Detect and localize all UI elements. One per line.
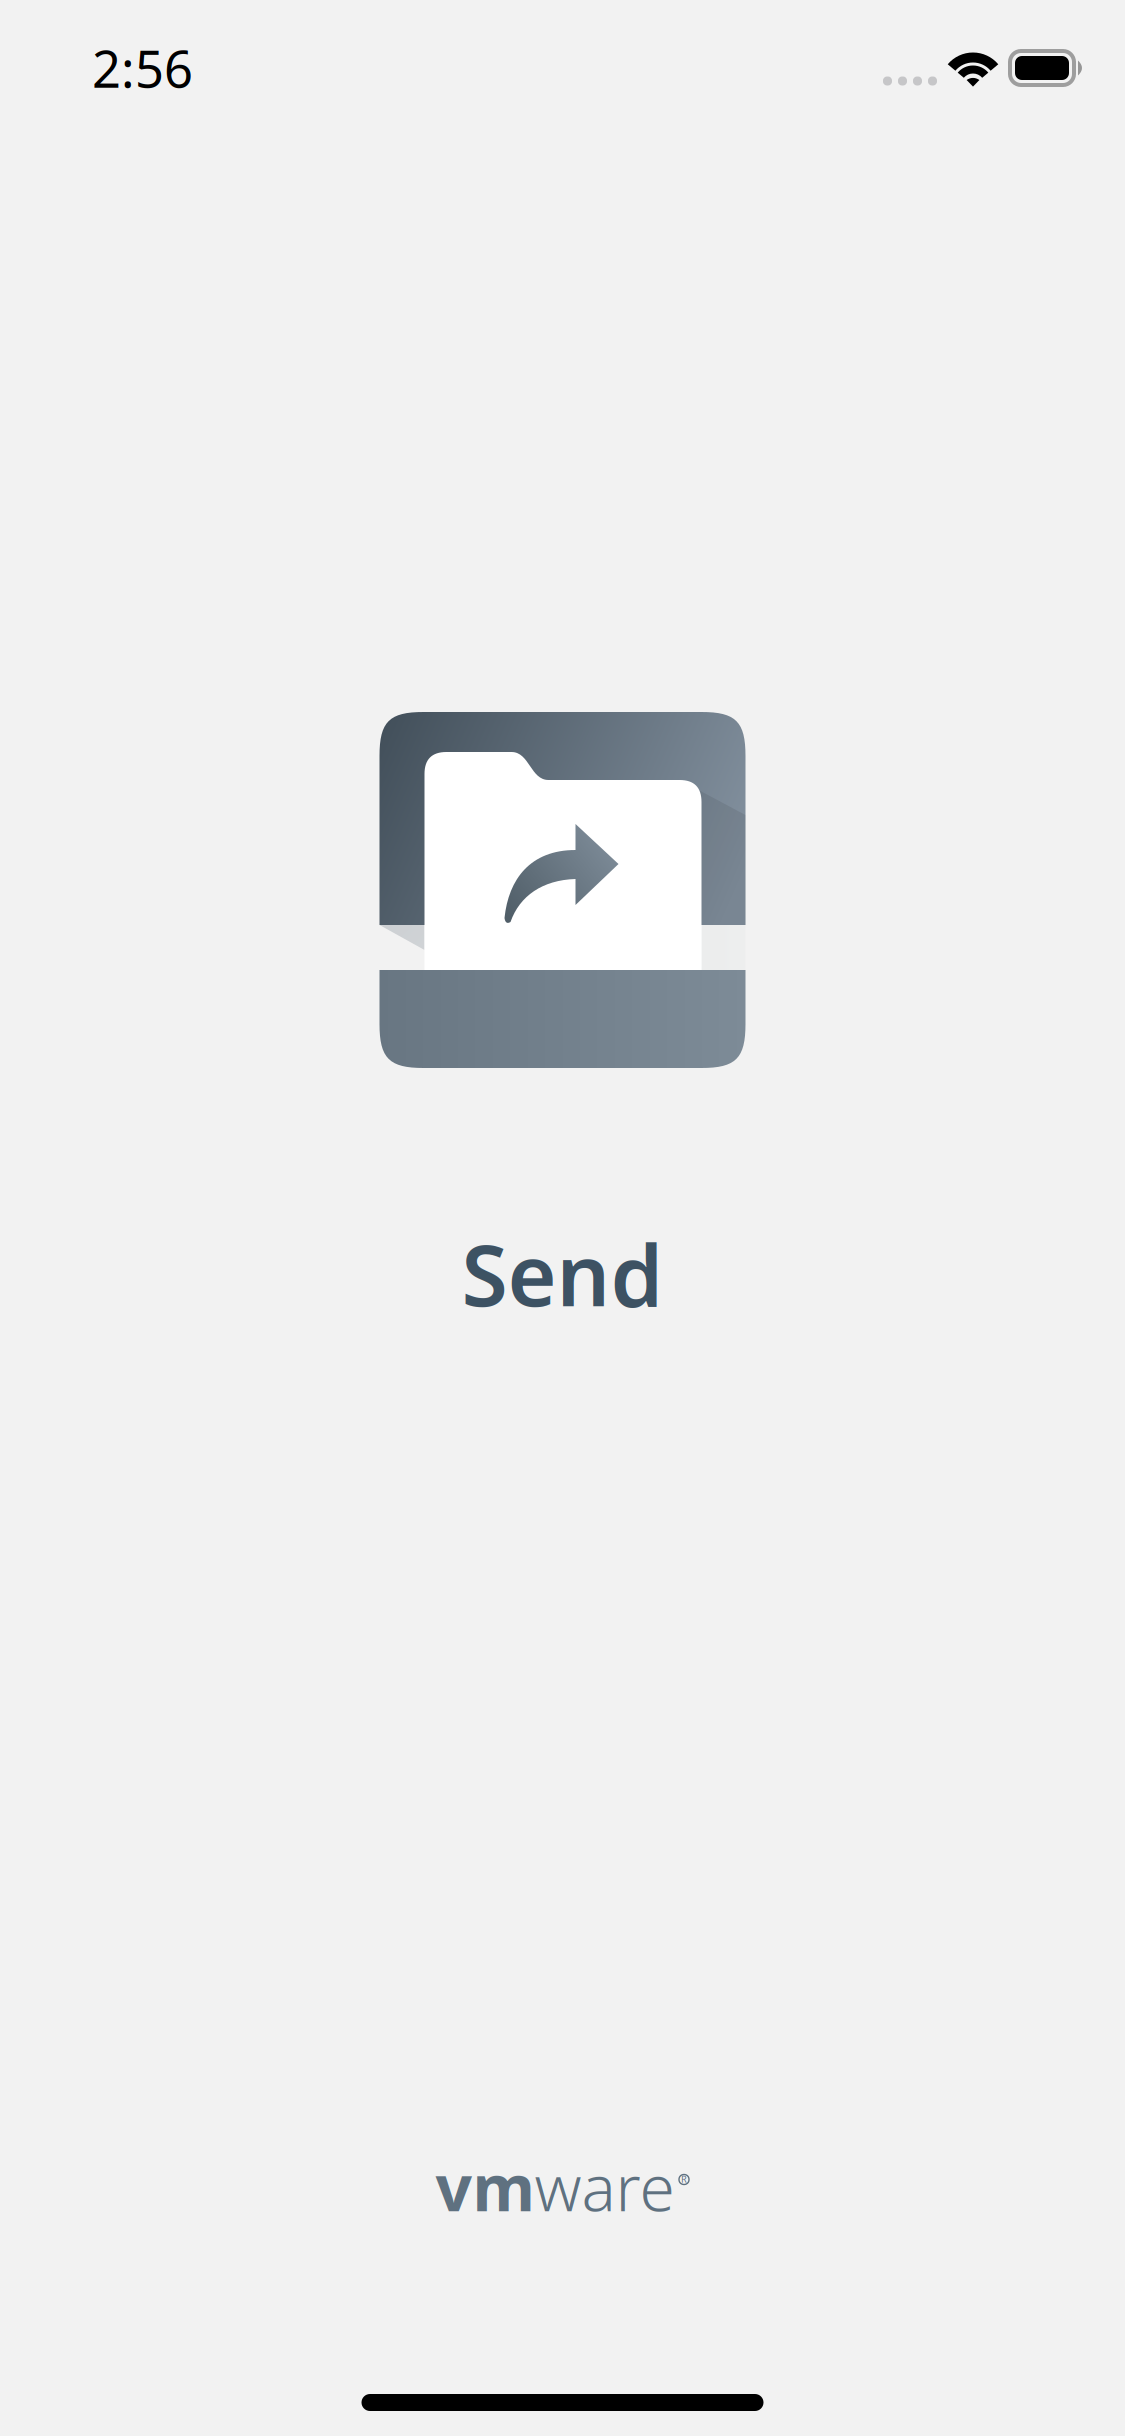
staticText: Send (461, 1218, 663, 1329)
staticText: R (681, 2173, 687, 2185)
staticText: 2:56 (92, 34, 193, 102)
staticText: vm (435, 2144, 534, 2229)
staticText: ware (534, 2144, 674, 2229)
